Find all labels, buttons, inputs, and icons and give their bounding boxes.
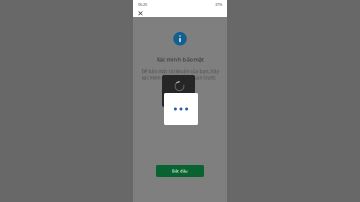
button[interactable]: Close [135, 9, 146, 17]
staticText: Để bảo mật tài khoản của bạn, hãy xác mi… [141, 68, 218, 81]
button[interactable]: Bắt đầu [156, 165, 204, 177]
staticText: 37% [215, 2, 222, 7]
staticText: 06:25 [138, 2, 147, 7]
staticText: Bắt đầu [172, 168, 188, 174]
staticText: Xác minh bảo mật [156, 55, 203, 63]
